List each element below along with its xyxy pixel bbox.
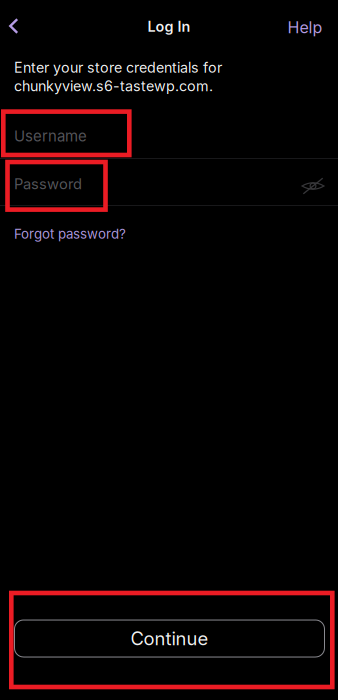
staticText: Enter your store credentials for [14, 59, 222, 76]
staticText: Password [14, 175, 82, 193]
button[interactable]: Username [0, 109, 338, 158]
staticText: Forgot password? [14, 226, 126, 242]
button[interactable]: Continue [14, 620, 324, 657]
staticText: Username [14, 127, 87, 145]
staticText: Continue [130, 627, 208, 650]
staticText: Help [287, 18, 322, 37]
button[interactable]: Forgot password? [0, 206, 338, 244]
staticText: chunkyview.s6-tastewp.com. [14, 77, 213, 95]
button[interactable]: Help [288, 4, 338, 48]
button[interactable]: Password [0, 159, 338, 205]
staticText: Log In [147, 18, 190, 35]
button[interactable]: Back [0, 4, 28, 48]
